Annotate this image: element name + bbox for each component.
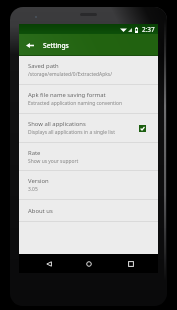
staticText: /storage/emulated/0/ExtractedApks/: [28, 71, 112, 78]
staticText: Show us your support: [28, 158, 79, 165]
staticText: Version: [28, 177, 49, 185]
button[interactable]: Version: [19, 171, 158, 199]
button[interactable]: Apk file name saving format: [19, 85, 158, 113]
staticText: Extracted application naming convention: [28, 100, 123, 107]
button[interactable]: Navigate up: [19, 34, 41, 56]
staticText: Displays all applications in a single li…: [28, 129, 115, 136]
staticText: Show all applications: [28, 120, 86, 128]
staticText: 3.05: [28, 186, 38, 193]
staticText: Saved path: [28, 62, 59, 70]
button[interactable]: Show all applications: [19, 114, 158, 142]
button[interactable]: Home: [82, 257, 96, 271]
staticText: 2:37: [142, 25, 155, 34]
staticText: About us: [28, 207, 53, 215]
button[interactable]: About us: [19, 200, 158, 221]
staticText: Apk file name saving format: [28, 91, 106, 99]
button[interactable]: Recent apps: [124, 257, 138, 271]
button[interactable]: Saved path: [19, 56, 158, 84]
button[interactable]: Rate: [19, 143, 158, 170]
staticText: Settings: [43, 41, 69, 50]
staticText: Rate: [28, 149, 41, 157]
button[interactable]: Back: [42, 257, 56, 271]
